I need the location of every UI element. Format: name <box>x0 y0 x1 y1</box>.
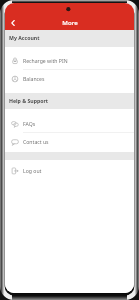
button[interactable]: Back <box>6 16 19 29</box>
button[interactable]: Recharge with PIN <box>5 52 134 69</box>
staticText: Contact us <box>23 138 49 145</box>
button[interactable]: Contact us <box>5 133 134 150</box>
button[interactable]: Log out <box>5 162 134 179</box>
staticText: Recharge with PIN <box>23 57 68 64</box>
staticText: Balances <box>23 75 45 82</box>
staticText: FAQs <box>23 120 36 127</box>
staticText: Log out <box>23 167 42 174</box>
staticText: Help & Support <box>9 97 49 104</box>
staticText: My Account <box>9 34 40 41</box>
button[interactable]: Balances <box>5 70 134 87</box>
staticText: More <box>62 18 78 26</box>
button[interactable]: FAQs <box>5 115 134 132</box>
